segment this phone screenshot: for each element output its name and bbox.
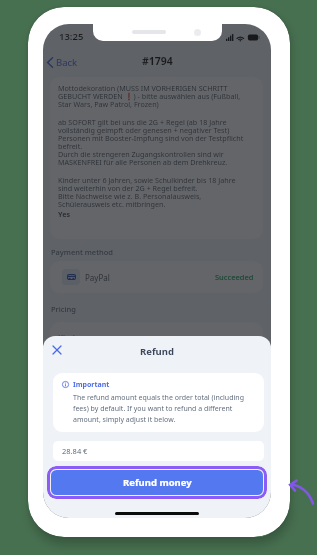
button[interactable]: Close <box>49 342 65 358</box>
staticText: 28.84 € <box>62 446 88 456</box>
staticText: #1794 <box>142 54 173 68</box>
button[interactable]: PayPal <box>50 261 263 293</box>
staticText: Yes <box>58 209 71 219</box>
staticText: Kinder unter 6 Jahren, sowie Schulkinder… <box>58 175 249 209</box>
staticText: PayPal <box>85 272 110 283</box>
staticText: 13:25 <box>59 30 84 43</box>
staticText: 8,90 € <box>232 333 255 344</box>
staticText: ab SOFORT gilt bei uns die 2G + Regel (a… <box>58 117 249 167</box>
button[interactable]: Refund money <box>51 470 263 495</box>
staticText: The refund amount equals the order total… <box>73 393 256 425</box>
staticText: Mottodekoration (MUSS IM VORHERIGEN SCHR… <box>58 83 249 109</box>
button[interactable]: Back <box>47 56 78 69</box>
staticText: Succeeded <box>215 272 254 282</box>
staticText: Important <box>73 380 110 390</box>
staticText: Pricing <box>51 304 76 314</box>
staticText: Payment method <box>51 247 113 257</box>
staticText: Kinder <box>58 333 83 344</box>
staticText: Refund money <box>123 476 192 489</box>
staticText: Back <box>56 56 78 69</box>
staticText: Refund <box>140 345 174 358</box>
button[interactable]: 28.84 € <box>53 441 264 461</box>
